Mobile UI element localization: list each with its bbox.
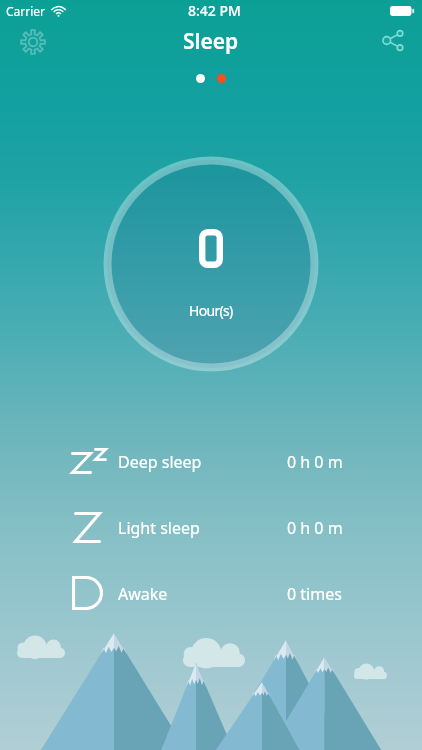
staticText: Light sleep: [118, 517, 200, 539]
button[interactable]: Settings: [11, 20, 55, 64]
staticText: 8:42 PM: [188, 1, 241, 20]
button[interactable]: Share: [370, 18, 414, 62]
staticText: Awake: [118, 583, 168, 605]
staticText: Sleep: [183, 27, 239, 56]
button[interactable]: Awake: [0, 561, 422, 627]
button[interactable]: Page 1: [196, 74, 205, 83]
staticText: Carrier: [6, 3, 46, 19]
button[interactable]: Light sleep: [0, 495, 422, 561]
button[interactable]: Deep sleep: [0, 429, 422, 495]
staticText: 0 times: [287, 583, 342, 605]
staticText: Hour(s): [189, 301, 233, 320]
staticText: Deep sleep: [118, 451, 202, 473]
button[interactable]: Page 2: [217, 74, 226, 83]
staticText: 0 h 0 m: [287, 451, 343, 473]
staticText: 0 h 0 m: [287, 517, 343, 539]
